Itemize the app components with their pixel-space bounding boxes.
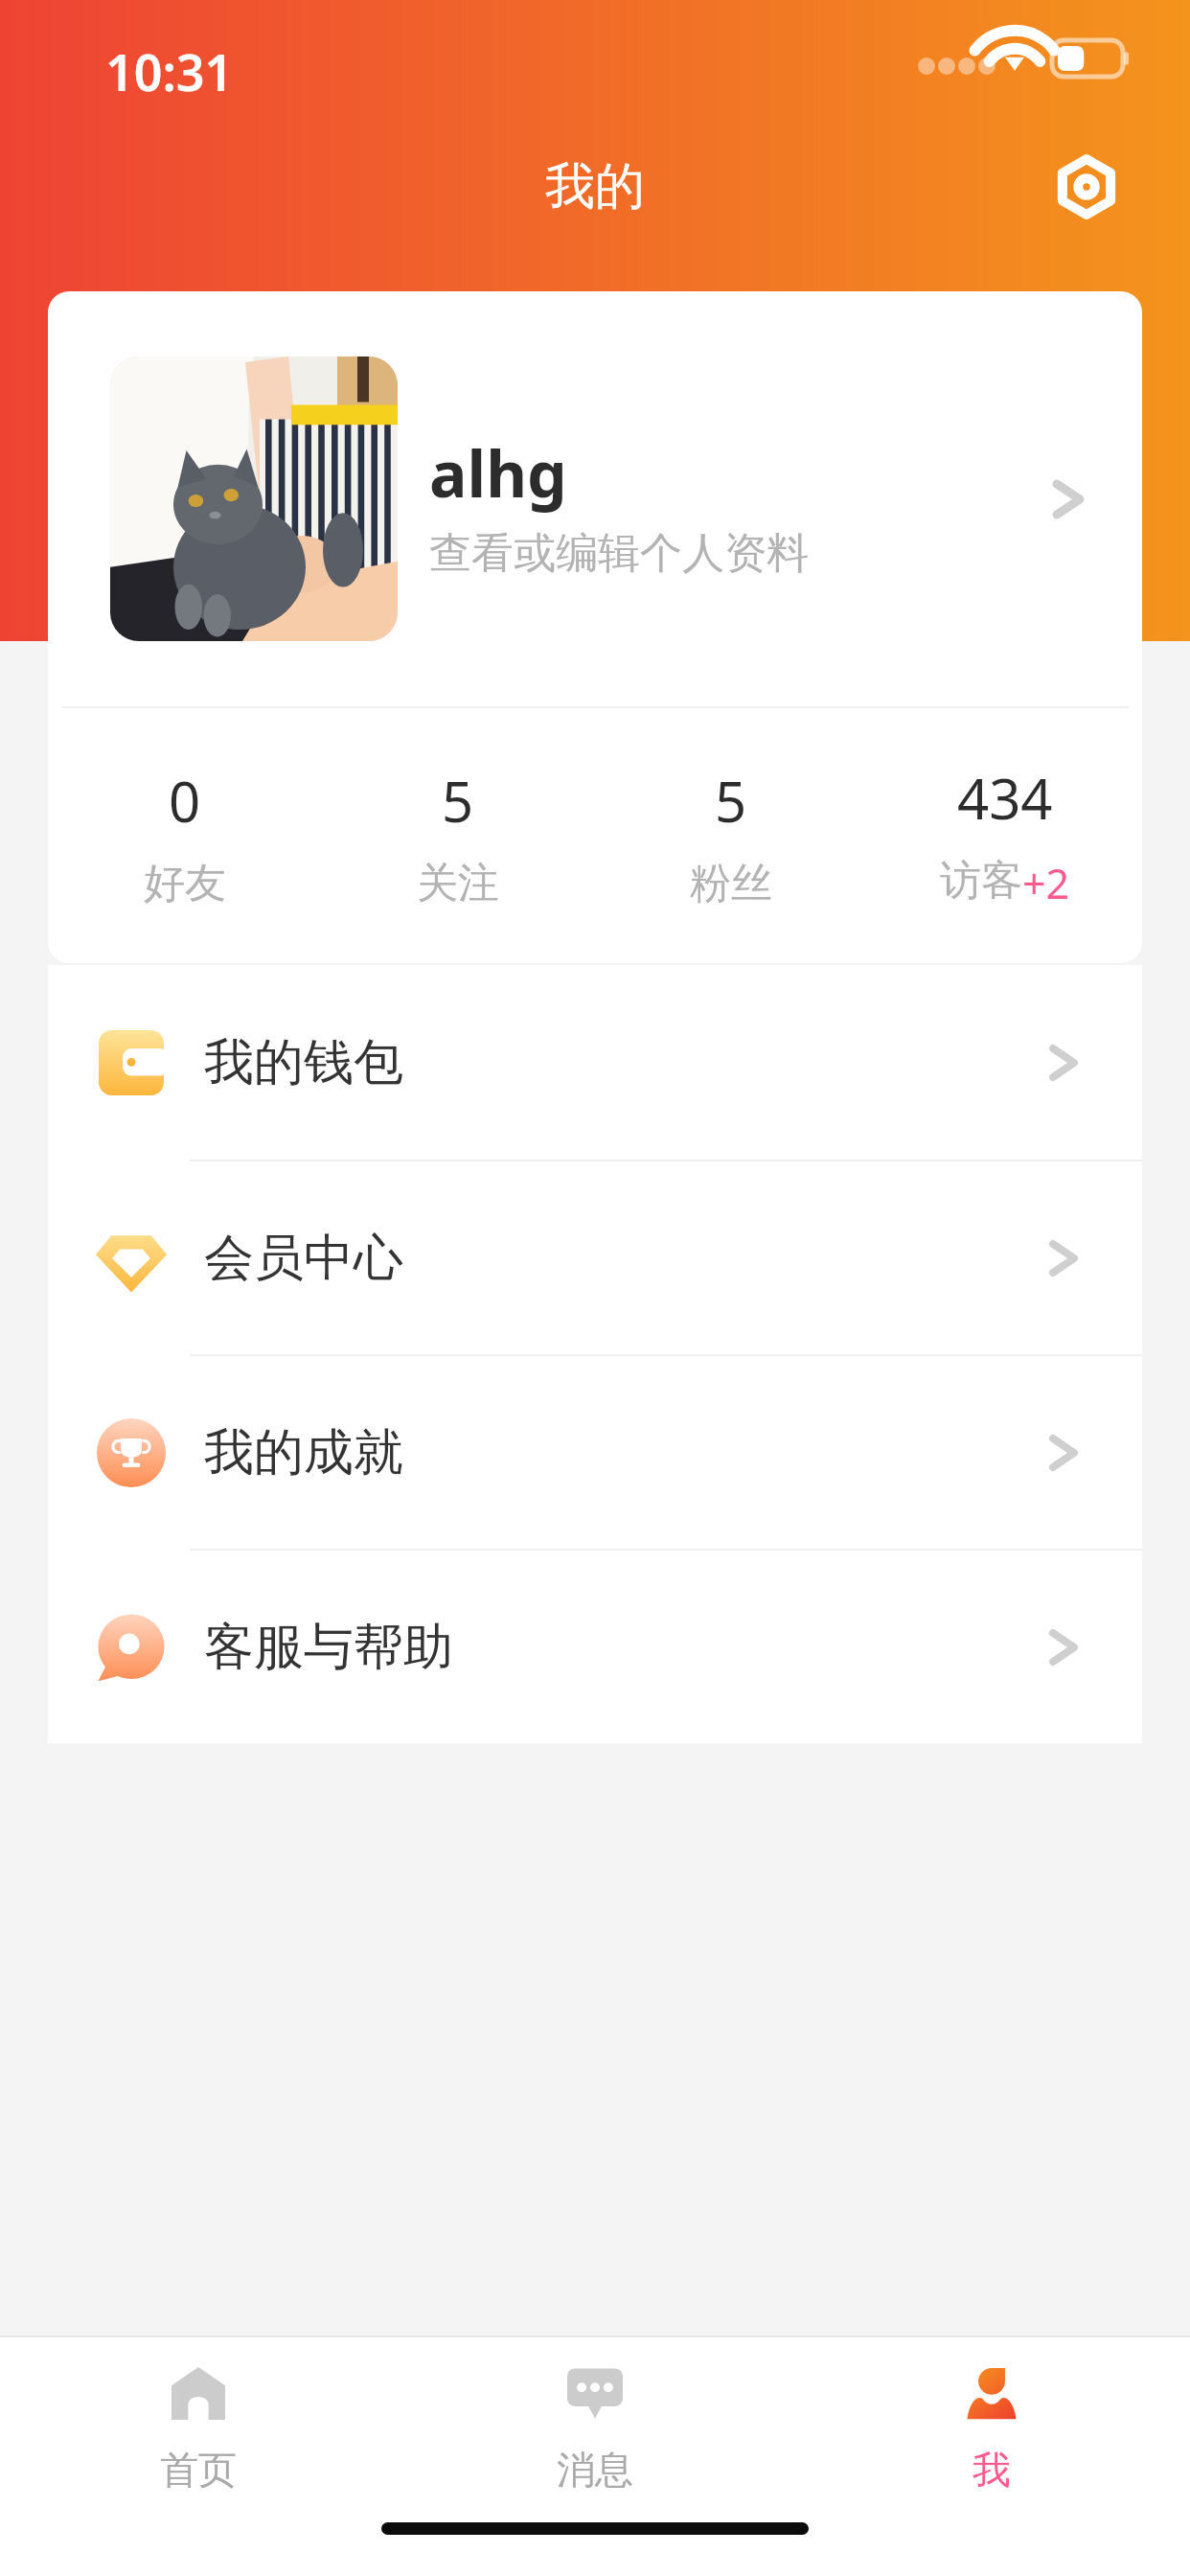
staticText: 会员中心 [204, 1227, 403, 1290]
button[interactable]: 我的成就 [48, 1356, 1142, 1549]
staticText: 好友 [144, 858, 226, 909]
staticText: 客服与帮助 [204, 1616, 453, 1679]
button[interactable]: Settings [1042, 143, 1131, 231]
staticText: 0 [169, 763, 201, 839]
button[interactable]: 客服与帮助 [48, 1551, 1142, 1743]
staticText: 5 [715, 763, 747, 839]
staticText: 我 [973, 2446, 1011, 2494]
button[interactable]: 0 [48, 763, 321, 909]
staticText: 查看或编辑个人资料 [429, 527, 809, 580]
staticText: alhg [429, 429, 567, 516]
staticText: 消息 [557, 2446, 633, 2494]
staticText: +2 [1022, 855, 1070, 911]
staticText: 我的钱包 [204, 1031, 403, 1094]
button[interactable]: 434 [868, 760, 1142, 911]
button[interactable]: 我 [793, 2337, 1190, 2494]
button[interactable]: 首页 [0, 2337, 397, 2494]
staticText: 粉丝 [690, 858, 772, 909]
button[interactable]: 5 [594, 763, 868, 909]
staticText: 关注 [417, 858, 499, 909]
button[interactable]: 会员中心 [48, 1161, 1142, 1354]
staticText: 434 [957, 760, 1053, 836]
button[interactable]: alhg [48, 291, 1142, 706]
button[interactable]: 5 [321, 763, 594, 909]
staticText: 我的 [545, 155, 645, 218]
staticText: 访客 [940, 855, 1022, 907]
button[interactable]: 我的钱包 [48, 965, 1142, 1160]
staticText: 10:31 [105, 37, 234, 105]
staticText: 我的成就 [204, 1421, 403, 1484]
staticText: 5 [442, 763, 474, 839]
button[interactable]: 消息 [397, 2337, 793, 2494]
staticText: 首页 [160, 2446, 237, 2494]
